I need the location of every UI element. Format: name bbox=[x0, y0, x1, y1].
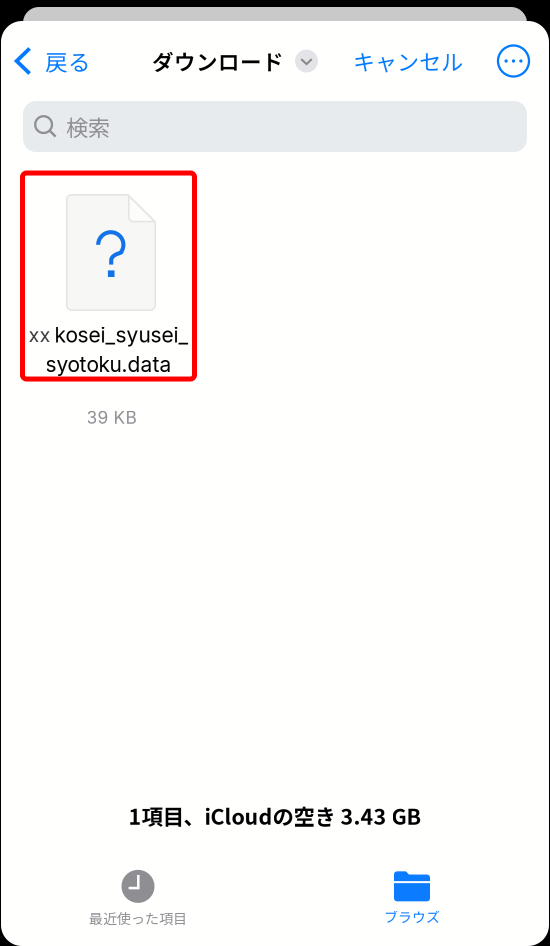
staticText: 39 KB bbox=[86, 407, 136, 428]
staticText: syotoku.data bbox=[45, 352, 171, 377]
button[interactable]: 最近使った項目 bbox=[1, 860, 275, 938]
button[interactable]: More bbox=[498, 45, 529, 76]
staticText: 最近使った項目 bbox=[89, 908, 187, 928]
staticText: 戻る bbox=[45, 45, 91, 77]
staticText: キャンセル bbox=[353, 45, 463, 77]
button[interactable]: ブラウズ bbox=[275, 861, 549, 937]
button[interactable]: キャンセル bbox=[345, 36, 471, 86]
staticText: 1項目、iCloudの空き 3.43 GB bbox=[128, 800, 421, 831]
button[interactable]: Folder options bbox=[295, 49, 318, 72]
button[interactable]: 戻る bbox=[1, 36, 99, 86]
staticText: kosei_syusei_ bbox=[54, 322, 188, 348]
staticText: xx bbox=[28, 323, 50, 347]
staticText: ブラウズ bbox=[384, 906, 440, 927]
staticText: 検索 bbox=[66, 111, 110, 142]
staticText: ダウンロード bbox=[152, 45, 284, 76]
